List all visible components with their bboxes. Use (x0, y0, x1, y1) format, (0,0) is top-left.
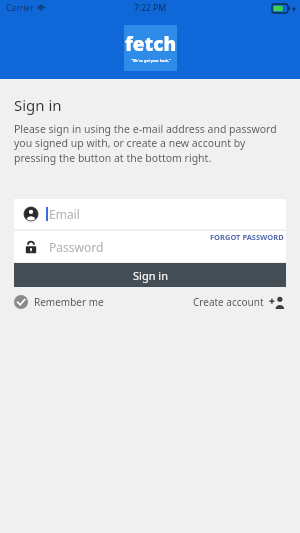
staticText: Carrier (6, 2, 34, 14)
button[interactable]: Create account (193, 295, 286, 309)
button[interactable]: Email (14, 199, 286, 229)
button[interactable]: Sign in (14, 263, 286, 287)
button[interactable]: Remember me (14, 295, 104, 309)
other: Create account (269, 296, 286, 309)
staticText: Sign in (14, 95, 62, 115)
button[interactable]: FORGOT PASSWORD (210, 231, 286, 242)
staticText: Email (49, 206, 80, 222)
staticText: Create account (193, 295, 264, 309)
staticText: Password (49, 239, 104, 255)
staticText: Remember me (34, 295, 104, 309)
staticText: fetch (125, 31, 177, 57)
staticText: Please sign in using the e-mail address … (14, 122, 286, 165)
staticText: Sign in (133, 268, 168, 283)
staticText: FORGOT PASSWORD (210, 232, 284, 242)
button[interactable]: Password (14, 231, 286, 262)
staticText: "We've got your back." (131, 58, 171, 63)
staticText: 7:22 PM (134, 2, 167, 14)
